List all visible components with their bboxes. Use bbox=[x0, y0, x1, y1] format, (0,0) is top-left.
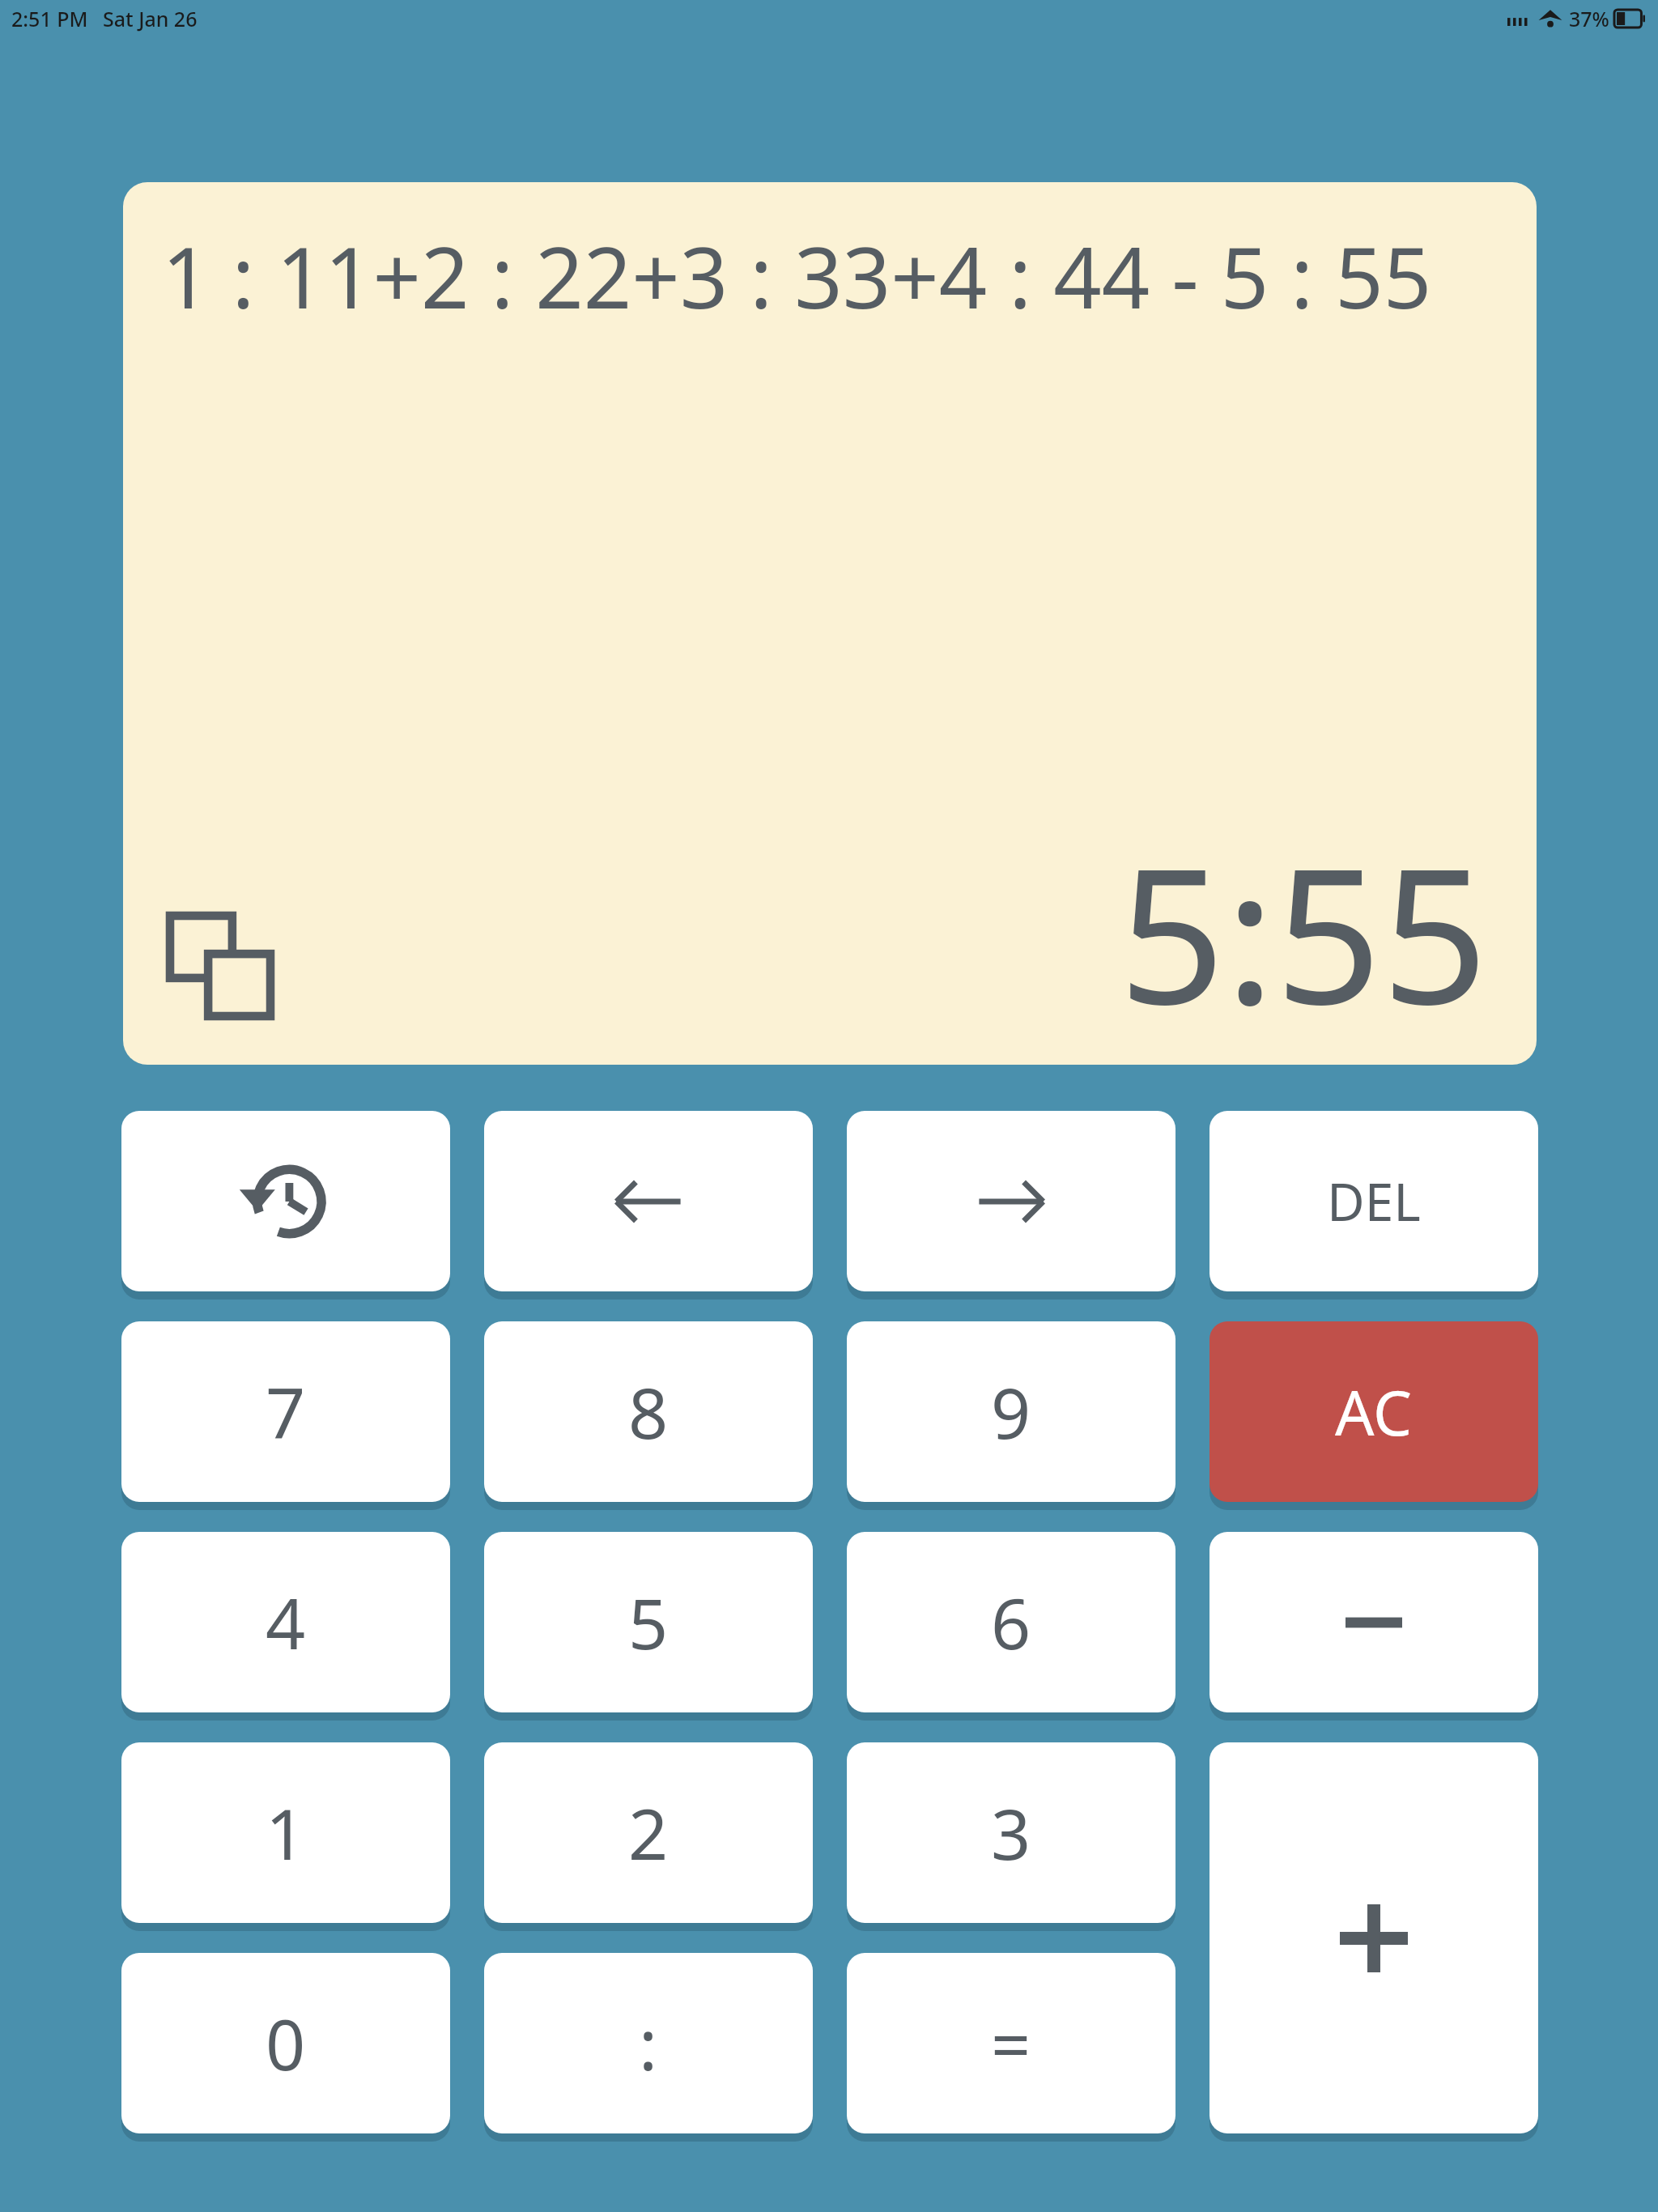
button[interactable]: = bbox=[847, 1953, 1175, 2133]
button[interactable]: : bbox=[484, 1953, 813, 2133]
staticText: 2 bbox=[628, 1785, 669, 1880]
staticText: 7 bbox=[266, 1364, 306, 1459]
button[interactable]: Copy result bbox=[155, 901, 285, 1031]
staticText: 3 bbox=[991, 1785, 1031, 1880]
staticText: 1 : 11+2 : 22+3 : 33+4 : 44 - 5 : 55 bbox=[162, 219, 1432, 334]
staticText: 0 bbox=[266, 1996, 306, 2091]
staticText: = bbox=[991, 1996, 1031, 2091]
other: Move cursor left bbox=[604, 1169, 693, 1234]
button[interactable]: DEL bbox=[1209, 1111, 1538, 1291]
button[interactable]: 8 bbox=[484, 1321, 813, 1502]
button[interactable]: History bbox=[121, 1111, 450, 1291]
staticText: AC bbox=[1335, 1370, 1413, 1454]
staticText: Sat Jan 26 bbox=[103, 5, 198, 32]
staticText: 4 bbox=[266, 1575, 306, 1670]
staticText: 5 bbox=[628, 1575, 669, 1670]
button[interactable]: 5 bbox=[484, 1532, 813, 1712]
button[interactable]: Move cursor right bbox=[847, 1111, 1175, 1291]
button[interactable]: 9 bbox=[847, 1321, 1175, 1502]
staticText: 9 bbox=[991, 1364, 1031, 1459]
button[interactable]: 7 bbox=[121, 1321, 450, 1502]
staticText: 6 bbox=[991, 1575, 1031, 1670]
button[interactable]: 1 bbox=[121, 1742, 450, 1923]
button[interactable]: 3 bbox=[847, 1742, 1175, 1923]
staticText: 37% bbox=[1569, 5, 1609, 32]
button[interactable]: AC bbox=[1209, 1321, 1538, 1502]
button[interactable]: Minus bbox=[1209, 1532, 1538, 1712]
button[interactable]: 6 bbox=[847, 1532, 1175, 1712]
staticText: 1 bbox=[266, 1785, 306, 1880]
staticText: DEL bbox=[1327, 1166, 1421, 1236]
other: History bbox=[241, 1157, 330, 1246]
button[interactable]: Move cursor left bbox=[484, 1111, 813, 1291]
other: Move cursor right bbox=[967, 1169, 1056, 1234]
button[interactable]: Plus bbox=[1209, 1742, 1538, 2133]
button[interactable]: 2 bbox=[484, 1742, 813, 1923]
other: Minus bbox=[1346, 1606, 1402, 1639]
button[interactable]: 0 bbox=[121, 1953, 450, 2133]
staticText: 2:51 PM bbox=[11, 5, 88, 32]
other: Plus bbox=[1340, 1904, 1408, 1972]
staticText: : bbox=[639, 1996, 658, 2091]
staticText: 8 bbox=[628, 1364, 669, 1459]
button[interactable]: 4 bbox=[121, 1532, 450, 1712]
staticText: 5:55 bbox=[1118, 805, 1488, 1058]
